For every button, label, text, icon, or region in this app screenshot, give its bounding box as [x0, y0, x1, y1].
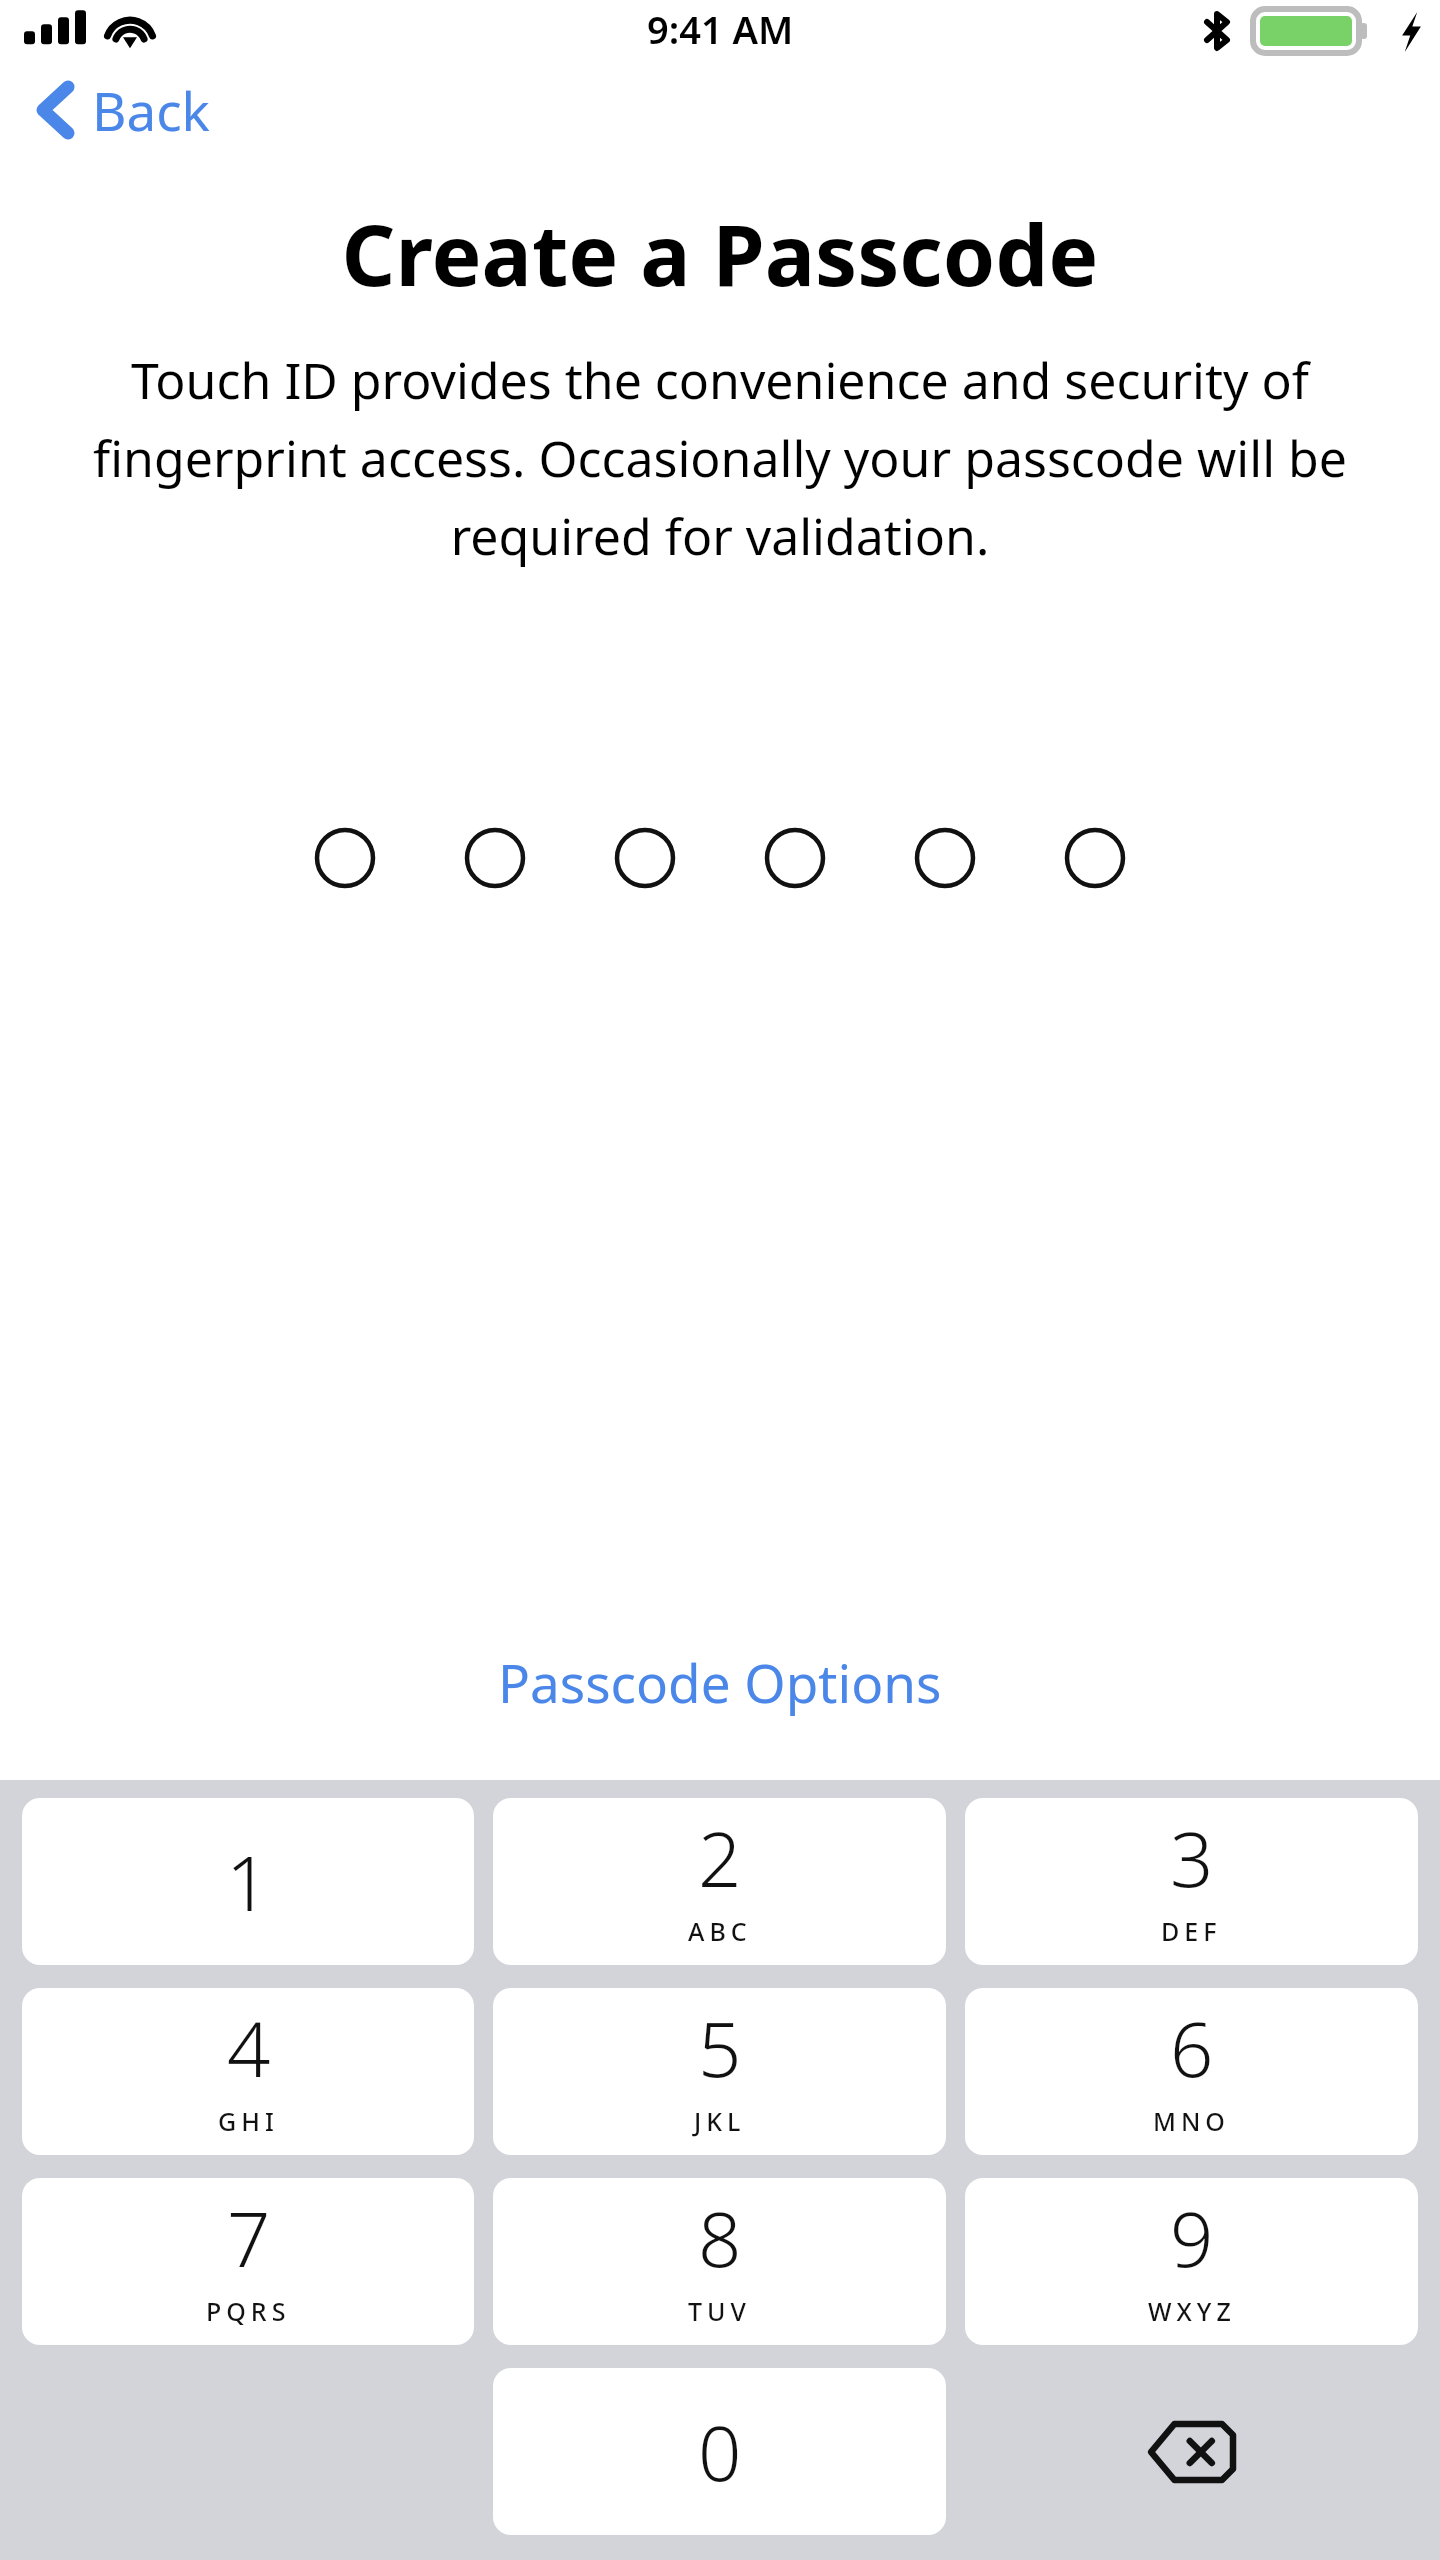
staticText: Back: [92, 74, 210, 146]
button[interactable]: 2: [493, 1798, 946, 1965]
staticText: 0: [698, 2400, 742, 2504]
staticText: 6: [1170, 1996, 1214, 2100]
staticText: TUV: [688, 2294, 751, 2328]
button[interactable]: 0: [493, 2368, 946, 2535]
button[interactable]: Delete: [965, 2368, 1418, 2535]
staticText: 5: [698, 1996, 742, 2100]
staticText: WXYZ: [1148, 2294, 1236, 2328]
staticText: 7: [227, 2186, 271, 2290]
button[interactable]: Passcode Options: [458, 1634, 982, 1730]
staticText: Touch ID provides the convenience and se…: [72, 346, 1368, 570]
staticText: 1: [226, 1830, 270, 1934]
button[interactable]: 1: [22, 1798, 474, 1965]
staticText: 9: [1170, 2186, 1214, 2290]
staticText: 8: [698, 2186, 742, 2290]
staticText: Passcode Options: [498, 1646, 942, 1718]
staticText: DEF: [1161, 1914, 1222, 1948]
staticText: 2: [698, 1806, 742, 1910]
staticText: 3: [1170, 1806, 1214, 1910]
button[interactable]: 4: [22, 1988, 474, 2155]
staticText: PQRS: [206, 2294, 291, 2328]
button[interactable]: 3: [965, 1798, 1418, 1965]
button[interactable]: 8: [493, 2178, 946, 2345]
staticText: JKL: [694, 2104, 746, 2138]
button[interactable]: 9: [965, 2178, 1418, 2345]
button[interactable]: 5: [493, 1988, 946, 2155]
staticText: GHI: [218, 2104, 279, 2138]
staticText: 9:41 AM: [647, 3, 794, 55]
button[interactable]: 7: [22, 2178, 474, 2345]
staticText: 4: [227, 1996, 271, 2100]
button[interactable]: Back: [0, 66, 238, 154]
staticText: ABC: [688, 1914, 752, 1948]
staticText: MNO: [1153, 2104, 1230, 2138]
staticText: Create a Passcode: [0, 196, 1440, 310]
button[interactable]: 6: [965, 1988, 1418, 2155]
